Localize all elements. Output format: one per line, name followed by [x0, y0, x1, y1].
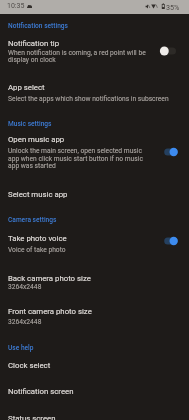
button[interactable]: Take photo voice: [0, 229, 189, 255]
staticText: Select music app: [8, 190, 68, 199]
staticText: 3264x2448: [8, 283, 42, 291]
staticText: 35%: [166, 3, 180, 11]
staticText: Voice of take photo: [8, 246, 66, 254]
button[interactable]: Switch on: [156, 143, 184, 161]
staticText: display on clock: [8, 56, 56, 64]
button[interactable]: Status screen: [0, 408, 189, 420]
staticText: App select: [8, 83, 45, 92]
staticText: Status screen: [8, 414, 56, 420]
button[interactable]: Open music app: [0, 130, 189, 172]
staticText: Select the apps which show notifications…: [8, 95, 169, 103]
button[interactable]: Switch on: [156, 232, 184, 250]
staticText: Use help: [8, 344, 34, 352]
staticText: app was started: [8, 162, 56, 170]
staticText: Clock select: [8, 361, 51, 370]
staticText: app when click music start button if no …: [8, 155, 143, 163]
staticText: Notification tip: [8, 39, 60, 48]
staticText: Camera settings: [8, 216, 57, 224]
staticText: Unlock the main screen, open selected mu…: [8, 147, 142, 155]
staticText: Front camera photo size: [8, 307, 92, 316]
staticText: When notification is coming, a red point…: [8, 49, 146, 57]
button[interactable]: Notification tip: [0, 31, 189, 64]
button[interactable]: Back camera photo size: [0, 269, 189, 295]
button[interactable]: App select: [0, 76, 189, 104]
button[interactable]: Notification screen: [0, 381, 189, 406]
button[interactable]: Clock select: [0, 355, 189, 379]
staticText: 10:35: [7, 2, 25, 10]
staticText: Notification settings: [8, 22, 68, 30]
staticText: Back camera photo size: [8, 274, 91, 283]
button[interactable]: Front camera photo size: [0, 302, 189, 328]
button[interactable]: 10:35: [0, 0, 189, 14]
staticText: Open music app: [8, 135, 65, 144]
staticText: 3264x2448: [8, 318, 42, 326]
button[interactable]: Switch off: [156, 42, 184, 60]
button[interactable]: Select music app: [0, 184, 189, 208]
staticText: Notification screen: [8, 387, 74, 396]
staticText: Take photo voice: [8, 234, 67, 243]
staticText: Music settings: [8, 120, 52, 128]
